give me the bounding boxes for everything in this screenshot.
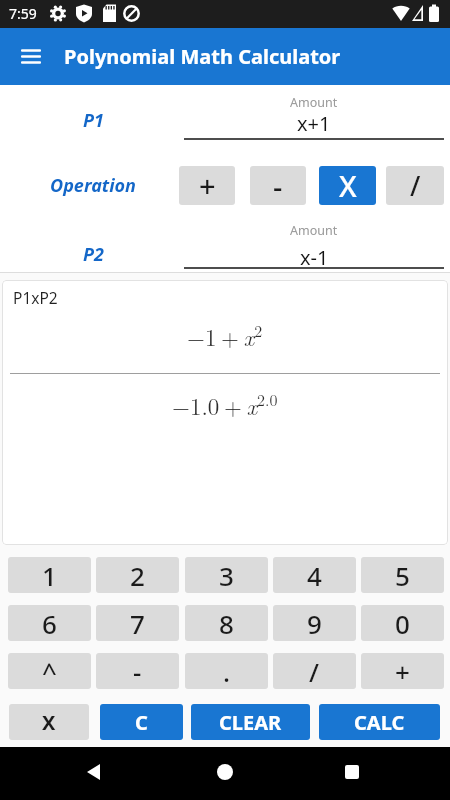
- staticText: /: [309, 654, 320, 689]
- staticText: P1xP2: [13, 287, 58, 308]
- button[interactable]: X: [9, 704, 89, 740]
- button[interactable]: -: [250, 166, 306, 205]
- staticText: 7: [130, 606, 145, 641]
- staticText: 2: [130, 558, 145, 593]
- button[interactable]: 1: [8, 557, 91, 593]
- button[interactable]: CLEAR: [191, 704, 310, 740]
- button[interactable]: /: [273, 653, 356, 689]
- staticText: 5: [395, 558, 410, 593]
- button[interactable]: 3: [185, 557, 268, 593]
- staticText: C: [135, 709, 148, 736]
- button[interactable]: 5: [361, 557, 444, 593]
- button[interactable]: +: [179, 166, 235, 205]
- staticText: CALC: [354, 709, 405, 736]
- button[interactable]: 8: [185, 605, 268, 641]
- button[interactable]: /: [386, 166, 444, 205]
- staticText: +: [199, 166, 216, 205]
- button[interactable]: 7: [96, 605, 179, 641]
- staticText: X: [42, 709, 56, 736]
- staticText: 6: [42, 606, 57, 641]
- button[interactable]: x+1: [184, 110, 444, 134]
- staticText: 0: [395, 606, 410, 641]
- staticText: .: [223, 654, 231, 689]
- button[interactable]: 4: [273, 557, 356, 593]
- staticText: 7:59: [9, 4, 37, 23]
- staticText: ^: [42, 654, 57, 689]
- staticText: 9: [307, 606, 322, 641]
- button[interactable]: +: [361, 653, 444, 689]
- button[interactable]: ^: [8, 653, 91, 689]
- button[interactable]: 0: [361, 605, 444, 641]
- staticText: Polynomial Math Calculator: [64, 43, 341, 70]
- staticText: Operation: [50, 173, 136, 198]
- staticText: −1.0 + x2.0: [172, 388, 278, 422]
- staticText: /: [410, 167, 421, 204]
- staticText: x+1: [297, 110, 331, 134]
- staticText: 3: [219, 558, 234, 593]
- staticText: X: [339, 166, 357, 205]
- staticText: Amount: [290, 94, 338, 110]
- staticText: 4: [307, 558, 322, 593]
- button[interactable]: x-1: [184, 244, 444, 268]
- staticText: Amount: [290, 222, 338, 237]
- staticText: 1: [42, 558, 57, 593]
- staticText: −1 + x2: [187, 319, 263, 353]
- button[interactable]: C: [100, 704, 183, 740]
- button[interactable]: -: [96, 653, 179, 689]
- staticText: P1: [83, 108, 104, 133]
- button[interactable]: 6: [8, 605, 91, 641]
- button[interactable]: 2: [96, 557, 179, 593]
- button[interactable]: .: [185, 653, 268, 689]
- staticText: P2: [83, 242, 104, 267]
- button[interactable]: CALC: [319, 704, 440, 740]
- staticText: 8: [219, 606, 234, 641]
- button[interactable]: X: [319, 166, 376, 205]
- button[interactable]: 9: [273, 605, 356, 641]
- staticText: -: [273, 166, 283, 205]
- button[interactable]: [16, 44, 46, 70]
- staticText: x-1: [300, 244, 329, 268]
- staticText: +: [395, 654, 410, 689]
- staticText: CLEAR: [219, 709, 282, 736]
- staticText: -: [133, 654, 142, 689]
